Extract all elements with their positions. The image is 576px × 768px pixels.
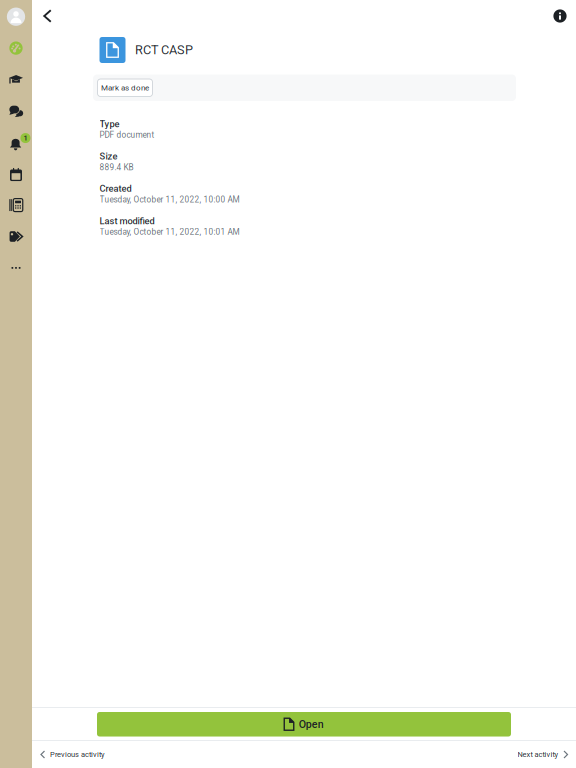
button[interactable]: Calendar: [0, 158, 32, 189]
staticText: 889.4 KB: [99, 162, 133, 172]
staticText: Next activity: [517, 750, 558, 759]
staticText: Previous activity: [50, 750, 105, 759]
staticText: Mark as done: [101, 83, 149, 92]
staticText: Size: [99, 151, 117, 162]
staticText: PDF document: [99, 130, 154, 140]
button[interactable]: Messages: [0, 95, 32, 127]
button[interactable]: Dashboard: [0, 32, 32, 64]
staticText: Open: [299, 718, 324, 730]
button[interactable]: Grades: [0, 189, 32, 221]
button[interactable]: My courses: [0, 64, 32, 95]
staticText: 1: [23, 133, 27, 142]
staticText: Tuesday, October 11, 2022, 10:01 AM: [99, 227, 239, 237]
button[interactable]: Information: [544, 0, 576, 32]
staticText: Tuesday, October 11, 2022, 10:00 AM: [99, 195, 239, 204]
button[interactable]: Back: [32, 0, 63, 32]
staticText: Type: [99, 118, 119, 129]
staticText: RCT CASP: [135, 43, 193, 57]
staticText: Last modified: [99, 215, 154, 226]
button[interactable]: Profile: [0, 1, 32, 32]
button[interactable]: Next activity: [509, 741, 576, 768]
button[interactable]: Tags: [0, 221, 32, 252]
button[interactable]: Previous activity: [32, 741, 113, 768]
staticText: Created: [99, 183, 131, 194]
button[interactable]: Notifications: [0, 127, 32, 158]
button[interactable]: Mark as done: [97, 79, 152, 96]
button[interactable]: Open: [97, 712, 511, 736]
button[interactable]: More: [0, 252, 32, 284]
